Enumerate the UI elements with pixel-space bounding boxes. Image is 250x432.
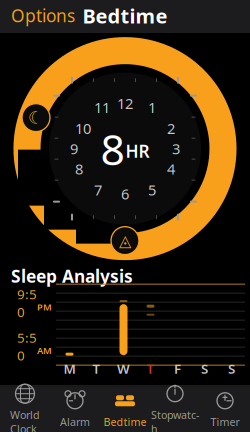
button[interactable]: Bedtime xyxy=(100,386,150,432)
button[interactable]: Options xyxy=(0,0,86,34)
button[interactable]: World Clock xyxy=(0,386,50,432)
staticText: W xyxy=(117,360,130,377)
staticText: 12 xyxy=(117,94,133,113)
staticText: T xyxy=(146,360,154,377)
staticText: HR xyxy=(125,140,149,163)
staticText: Bedtime xyxy=(103,415,146,429)
button[interactable]: Wake up xyxy=(111,227,139,255)
staticText: Timer xyxy=(210,415,239,429)
staticText: 2 xyxy=(167,119,175,138)
staticText: ☾ xyxy=(28,108,44,127)
staticText: Options xyxy=(11,4,75,27)
staticText: S xyxy=(228,360,235,377)
staticText: 10 xyxy=(75,119,91,138)
staticText: 11 xyxy=(94,98,110,117)
staticText: M xyxy=(63,360,75,377)
staticText: Stopwatch xyxy=(151,408,199,432)
button[interactable]: Bedtime xyxy=(22,104,50,132)
staticText: 3 xyxy=(172,139,180,158)
button[interactable]: Timer xyxy=(200,386,250,432)
staticText: 6 xyxy=(121,184,129,204)
staticText: 4 xyxy=(167,159,175,179)
staticText: AM xyxy=(37,344,52,357)
staticText: 5 xyxy=(148,180,156,200)
staticText: 7 xyxy=(94,180,102,200)
staticText: Alarm xyxy=(60,415,90,429)
staticText: 9:50 xyxy=(17,285,37,321)
staticText: ◬ xyxy=(119,232,131,250)
staticText: Bedtime xyxy=(82,2,167,29)
staticText: S xyxy=(201,360,208,377)
staticText: World Clock xyxy=(10,408,40,432)
staticText: 5:50 xyxy=(17,329,37,364)
staticText: 8 xyxy=(75,159,83,179)
button[interactable]: Stopwatch xyxy=(150,386,200,432)
staticText: F xyxy=(174,360,181,377)
staticText: T xyxy=(92,360,100,377)
staticText: PM xyxy=(37,301,52,313)
staticText: 8 xyxy=(100,120,124,177)
staticText: 9 xyxy=(70,139,78,158)
button[interactable]: Alarm xyxy=(50,386,100,432)
staticText: Sleep Analysis xyxy=(11,265,133,288)
staticText: 1 xyxy=(148,98,156,117)
